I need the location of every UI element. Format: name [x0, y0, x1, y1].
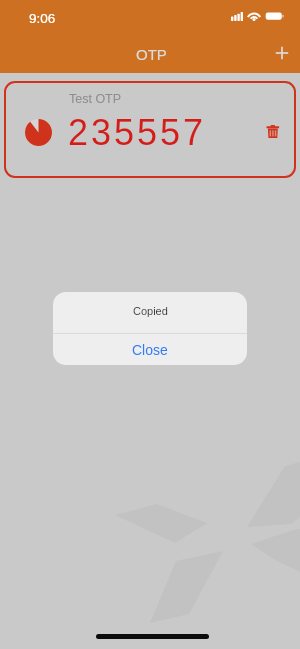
- staticText: 235557: [68, 112, 207, 152]
- staticText: Copied: [133, 305, 168, 317]
- staticText: OTP: [136, 46, 167, 63]
- button[interactable]: Delete: [257, 116, 287, 146]
- staticText: Close: [132, 342, 168, 358]
- staticText: 9:06: [29, 11, 56, 26]
- button[interactable]: Add: [266, 37, 298, 69]
- staticText: Test OTP: [69, 92, 122, 106]
- button[interactable]: Close: [53, 334, 247, 365]
- button[interactable]: Test OTP: [4, 81, 296, 178]
